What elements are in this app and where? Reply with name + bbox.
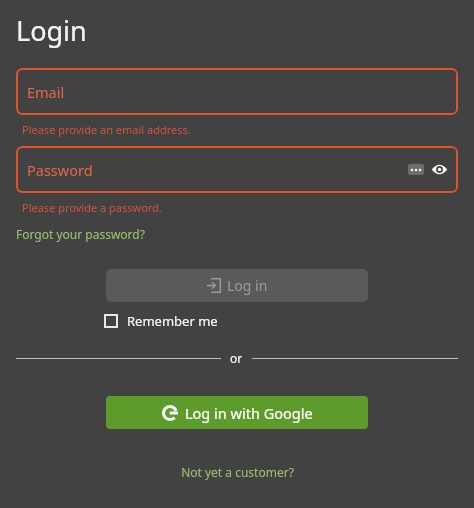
staticText: Not yet a customer? [181, 464, 294, 480]
staticText: Remember me [127, 312, 218, 330]
staticText: Password [27, 160, 93, 180]
button[interactable]: Log in with Google [106, 396, 368, 429]
staticText: or [230, 350, 243, 366]
staticText: Log in [227, 276, 268, 295]
button[interactable]: Password manager [408, 164, 424, 175]
button[interactable]: Email [16, 68, 458, 115]
button[interactable]: Log in [106, 269, 368, 302]
button[interactable]: Show password [431, 161, 448, 178]
staticText: Log in with Google [185, 403, 313, 423]
staticText: Please provide a password. [22, 200, 162, 215]
staticText: Forgot your password? [16, 226, 145, 242]
button[interactable]: Not yet a customer? [181, 464, 294, 480]
staticText: Login [16, 12, 87, 49]
button[interactable]: Remember me [104, 312, 218, 330]
staticText: Email [27, 82, 65, 102]
button[interactable]: Forgot your password? [16, 226, 145, 242]
button[interactable]: Password [16, 146, 458, 193]
staticText: Please provide an email address. [22, 122, 191, 137]
